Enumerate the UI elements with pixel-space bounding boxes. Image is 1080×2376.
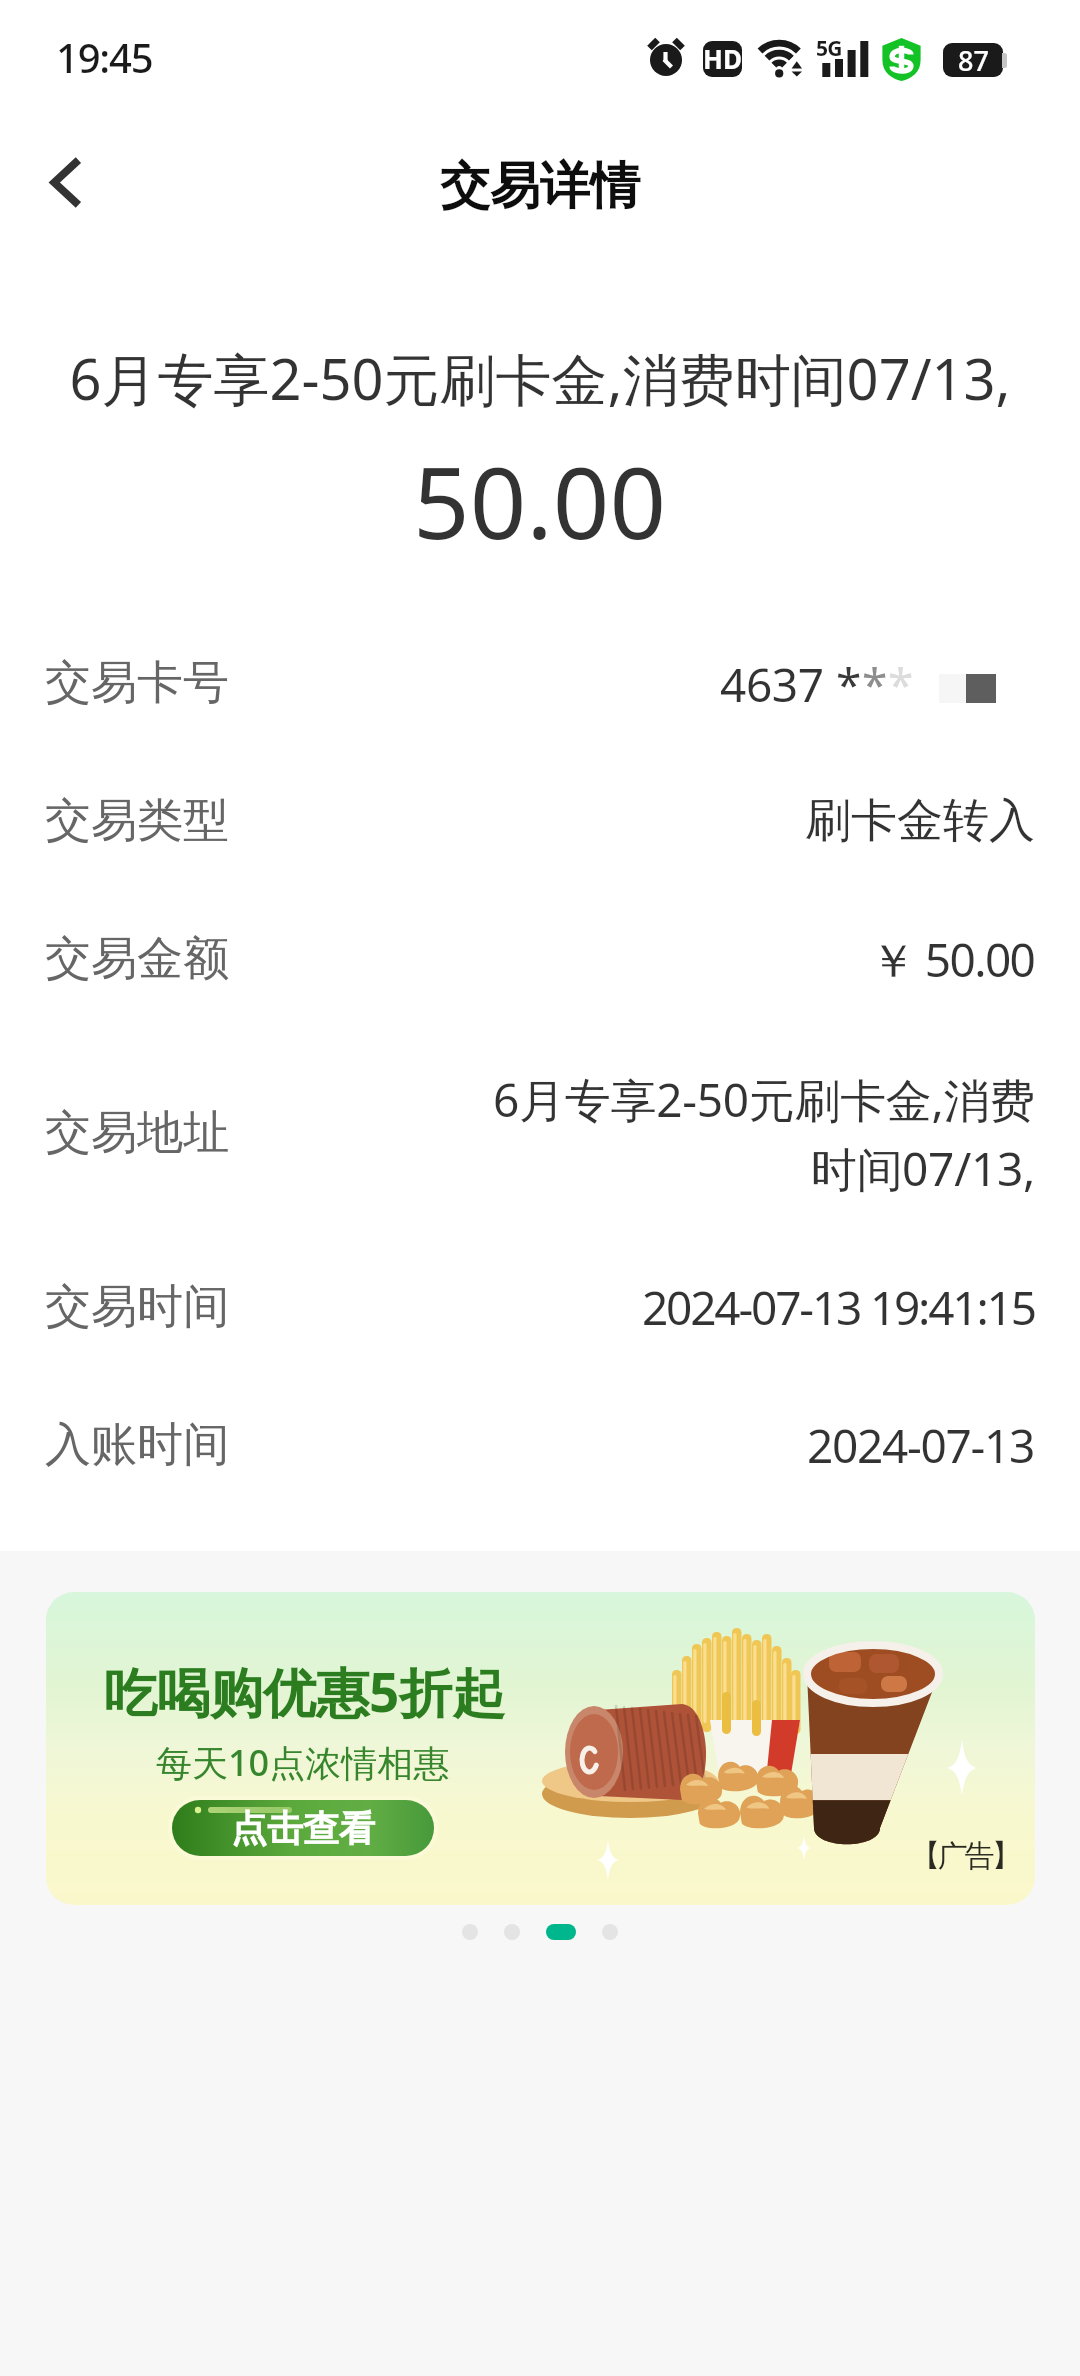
staticText: ￥ 50.00 — [870, 928, 1035, 991]
staticText: 点击查看 — [231, 1806, 375, 1851]
staticText: 5G — [816, 34, 842, 63]
staticText: * — [888, 653, 914, 713]
staticText: 2024-07-13 — [807, 1414, 1035, 1477]
button[interactable]: 点击查看 — [168, 1796, 438, 1860]
staticText: 【广告】 — [912, 1837, 1020, 1875]
staticText: 87 — [958, 43, 989, 76]
staticText: 交易详情 — [440, 155, 640, 218]
staticText: 19:45 — [56, 30, 153, 84]
staticText: 2024-07-13 19:41:15 — [642, 1276, 1035, 1339]
staticText: 入账时间 — [45, 1416, 229, 1474]
staticText: 50.00 — [413, 433, 667, 568]
staticText: 每天10点浓情相惠 — [156, 1738, 450, 1787]
staticText: 吃喝购优惠5折起 — [104, 1655, 506, 1727]
staticText: 交易卡号 — [45, 654, 229, 712]
button[interactable]: 吃喝购优惠5折起 — [46, 1592, 1035, 1905]
button[interactable]: Back — [0, 113, 128, 249]
staticText: 交易金额 — [45, 930, 229, 988]
staticText: 交易时间 — [45, 1278, 229, 1336]
staticText: 6月专享2-50元刷卡金,消费 时间07/13, — [493, 1068, 1035, 1199]
staticText: 刷卡金转入 — [805, 792, 1035, 850]
staticText: 6月专享2-50元刷卡金,消费时间07/13, — [69, 340, 1011, 416]
staticText: * — [862, 653, 888, 713]
staticText: HD — [703, 41, 742, 76]
staticText: 交易地址 — [45, 1104, 229, 1162]
staticText: * — [836, 653, 862, 713]
staticText: 交易类型 — [45, 792, 229, 850]
staticText: 4637 — [720, 653, 836, 713]
